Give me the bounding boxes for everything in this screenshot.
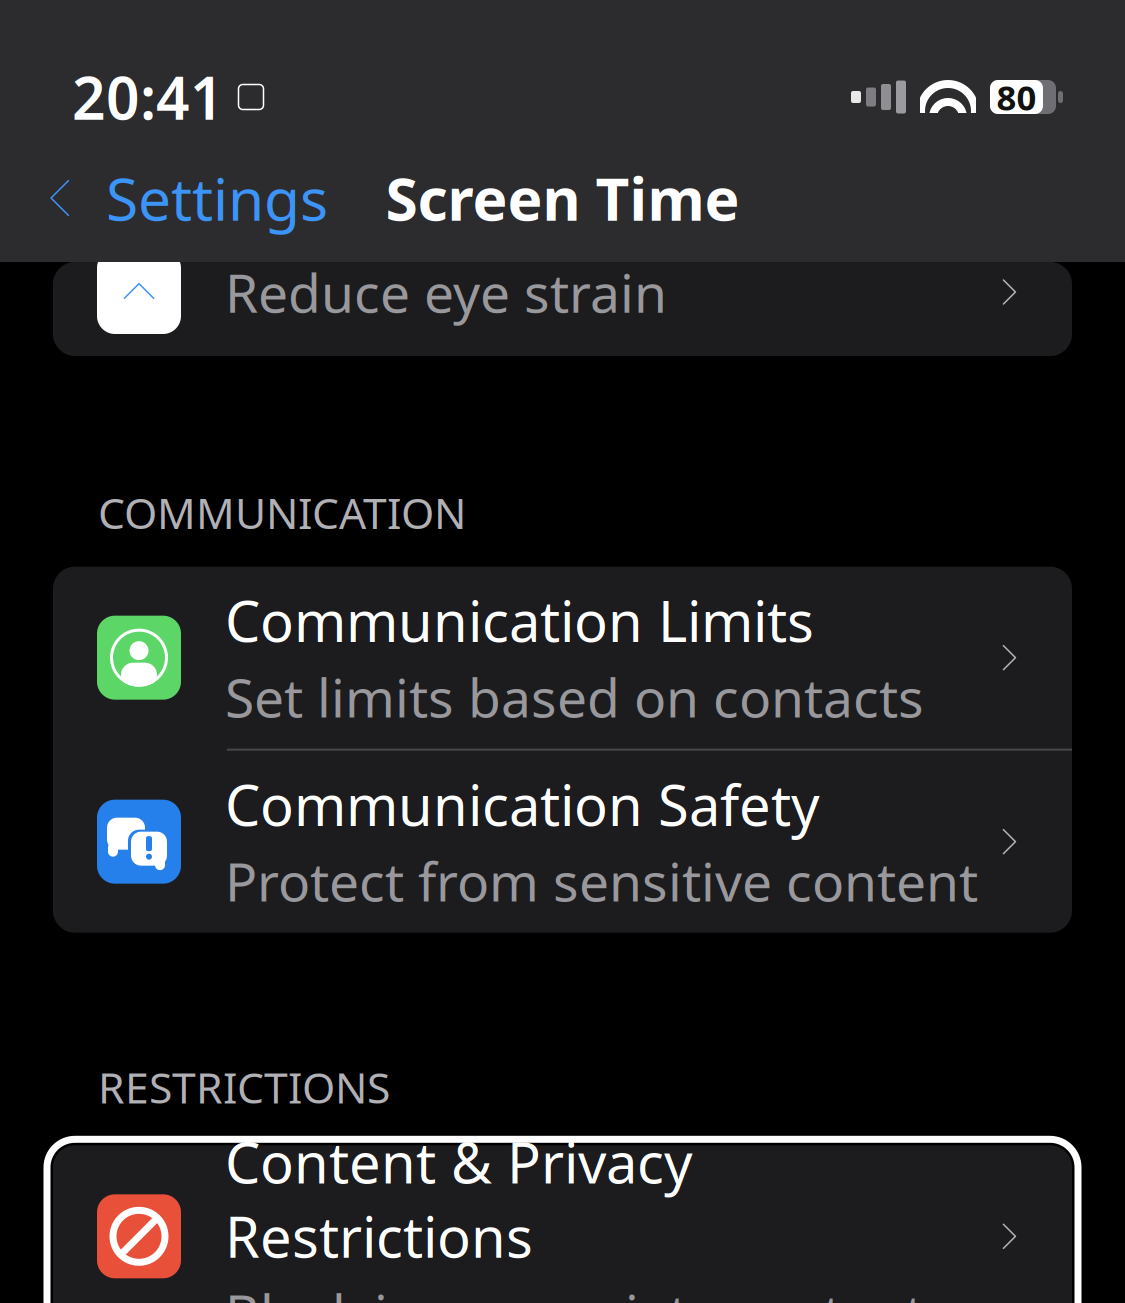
staticText: 20:41 xyxy=(72,58,224,136)
staticText: Block inappropriate content xyxy=(225,1277,924,1303)
staticText: COMMUNICATION xyxy=(98,484,466,541)
staticText: 80 xyxy=(996,74,1036,120)
staticText: Settings xyxy=(106,159,328,237)
button[interactable]: Communication Limits xyxy=(53,567,1072,749)
staticText: Communication Safety xyxy=(225,767,820,841)
staticText: Protect from sensitive content xyxy=(225,845,978,916)
staticText: Screen Time xyxy=(385,159,739,237)
staticText: Reduce eye strain xyxy=(225,257,667,327)
button[interactable]: Content & Privacy Restrictions xyxy=(53,1145,1072,1303)
staticText: Communication Limits xyxy=(225,583,814,657)
staticText: Set limits based on contacts xyxy=(225,661,924,732)
staticText: RESTRICTIONS xyxy=(98,1059,390,1115)
staticText: Content & Privacy Restrictions xyxy=(225,1124,693,1273)
button[interactable]: Settings xyxy=(0,149,328,247)
button[interactable]: Communication Safety xyxy=(53,751,1072,933)
